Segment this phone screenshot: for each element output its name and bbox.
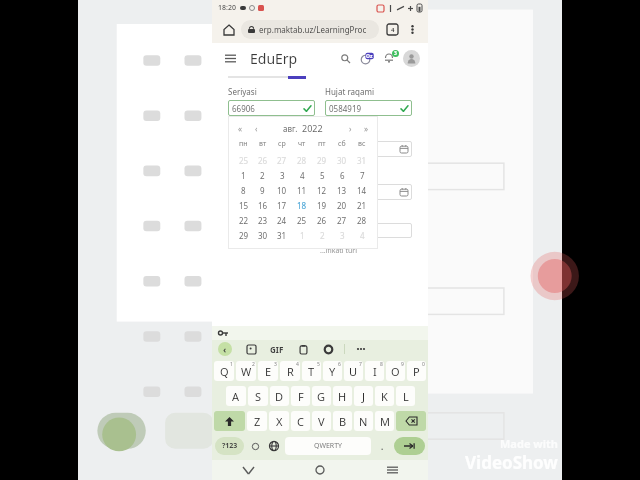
button[interactable]: Previous month (250, 122, 262, 134)
button[interactable]: R (280, 361, 300, 381)
button[interactable]: Profile (403, 50, 420, 67)
button[interactable]: 25 (292, 213, 312, 228)
button[interactable]: U (344, 361, 363, 381)
button[interactable]: 11 (292, 183, 312, 198)
button[interactable]: 28 (352, 213, 372, 228)
button[interactable]: P (407, 361, 426, 381)
button[interactable]: 27 (332, 213, 352, 228)
button[interactable]: L (396, 386, 415, 406)
button[interactable]: Next year (360, 122, 372, 134)
button[interactable]: I (365, 361, 384, 381)
button[interactable]: 26 (312, 213, 332, 228)
button[interactable]: 17 (272, 198, 292, 213)
button[interactable]: 8 (234, 183, 253, 198)
button[interactable]: H (333, 386, 352, 406)
button[interactable]: Emoji (247, 437, 263, 455)
button[interactable]: 16 (253, 198, 272, 213)
button[interactable]: 29 (234, 228, 253, 243)
button[interactable]: 4 (352, 228, 372, 243)
button[interactable]: M (375, 411, 394, 431)
button[interactable]: Tabs (384, 21, 401, 38)
button[interactable]: 10 (272, 183, 292, 198)
button[interactable]: 0584919 (325, 100, 412, 116)
button[interactable]: More (355, 343, 367, 355)
button[interactable]: 26 (253, 153, 272, 168)
button[interactable]: 22 (234, 213, 253, 228)
button[interactable]: Enter (394, 437, 425, 455)
button[interactable]: 27 (272, 153, 292, 168)
button[interactable]: . (373, 437, 391, 455)
button[interactable]: 24 (272, 213, 292, 228)
button[interactable]: Clipboard (297, 343, 309, 355)
button[interactable]: Previous year (234, 122, 246, 134)
button[interactable]: 1 (292, 228, 312, 243)
button[interactable]: J (354, 386, 373, 406)
button[interactable]: N (354, 411, 373, 431)
button[interactable]: Hide keyboard (212, 460, 284, 480)
button[interactable]: 2 (320, 184, 412, 200)
button[interactable]: Home (284, 460, 356, 480)
button[interactable]: 25 (234, 153, 253, 168)
button[interactable]: Next month (344, 122, 356, 134)
button[interactable]: 20 (332, 198, 352, 213)
button[interactable]: A (226, 386, 246, 406)
button[interactable]: Home (219, 20, 239, 40)
button[interactable]: V (312, 411, 331, 431)
button[interactable]: ...nasi (320, 141, 412, 157)
button[interactable]: 31 (352, 153, 372, 168)
button[interactable]: 2022 (302, 122, 323, 134)
button[interactable]: QWERTY (285, 437, 371, 455)
button[interactable]: K (375, 386, 394, 406)
button[interactable]: 12 (312, 183, 332, 198)
button[interactable]: Change language (265, 437, 283, 455)
button[interactable]: S (248, 386, 268, 406)
button[interactable]: Q (214, 361, 234, 381)
button[interactable]: 1 (234, 168, 253, 183)
button[interactable]: Language (358, 49, 376, 67)
button[interactable]: More options (404, 21, 421, 38)
button[interactable]: Notifications (380, 49, 398, 67)
button[interactable]: C (291, 411, 310, 431)
button[interactable]: 5 (312, 168, 332, 183)
button[interactable]: 6 (332, 168, 352, 183)
button[interactable]: X (269, 411, 289, 431)
button[interactable]: 7 (352, 168, 372, 183)
button[interactable]: Z (247, 411, 267, 431)
button[interactable]: 3 (272, 168, 292, 183)
button[interactable]: Y (323, 361, 342, 381)
button[interactable]: 2 (253, 168, 272, 183)
button[interactable]: Back (218, 342, 232, 356)
button[interactable]: Stickers (245, 343, 257, 355)
button[interactable]: 30 (332, 153, 352, 168)
button[interactable]: 3 (332, 228, 352, 243)
button[interactable]: 23 (253, 213, 272, 228)
button[interactable]: B (333, 411, 352, 431)
button[interactable]: Search (336, 49, 354, 67)
button[interactable]: ?123 (215, 437, 244, 455)
button[interactable]: G (312, 386, 331, 406)
button[interactable]: F (291, 386, 310, 406)
button[interactable]: Menu (220, 48, 240, 68)
button[interactable]: W (236, 361, 256, 381)
button[interactable]: Recent apps (356, 460, 428, 480)
button[interactable]: 66906 (228, 100, 315, 116)
button[interactable]: ...shkilot (320, 223, 412, 238)
button[interactable]: 18 (292, 198, 312, 213)
button[interactable]: Settings (322, 343, 334, 355)
button[interactable]: 30 (253, 228, 272, 243)
button[interactable]: 14 (352, 183, 372, 198)
button[interactable]: O (386, 361, 405, 381)
button[interactable]: 29 (312, 153, 332, 168)
button[interactable]: 2 (312, 228, 332, 243)
button[interactable]: 28 (292, 153, 312, 168)
button[interactable]: авг. (283, 123, 298, 134)
button[interactable]: D (270, 386, 289, 406)
button[interactable]: 9 (253, 183, 272, 198)
button[interactable]: GIF (270, 344, 284, 355)
button[interactable]: 15 (234, 198, 253, 213)
button[interactable]: 31 (272, 228, 292, 243)
button[interactable]: Shift (214, 411, 245, 431)
button[interactable]: erp.maktab.uz/LearningProc (241, 20, 379, 39)
button[interactable]: 19 (312, 198, 332, 213)
button[interactable]: Backspace (396, 411, 426, 431)
